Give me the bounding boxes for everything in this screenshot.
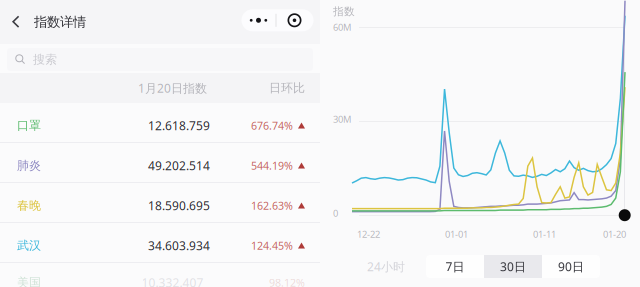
staticText: 49.202.514 (148, 157, 210, 173)
staticText: 676.74% (251, 118, 293, 133)
button[interactable]: Close (275, 9, 313, 31)
staticText: 美国 (17, 275, 41, 287)
staticText: 60M (333, 21, 351, 33)
staticText: 30日 (500, 258, 526, 274)
staticText: 0 (333, 207, 338, 219)
staticText: 124.45% (251, 238, 293, 253)
staticText: 544.19% (251, 158, 293, 173)
staticText: 指数详情 (34, 14, 86, 30)
button[interactable]: 春晚 (0, 183, 320, 223)
staticText: 春晚 (17, 198, 41, 213)
button[interactable]: 武汉 (0, 223, 320, 263)
staticText: 24小时 (367, 258, 405, 274)
staticText: 90日 (558, 258, 584, 274)
button[interactable]: 口罩 (0, 103, 320, 143)
button[interactable]: 30日 (484, 255, 542, 278)
button[interactable]: 90日 (542, 255, 600, 278)
staticText: 10.332.407 (141, 274, 203, 287)
button[interactable]: 7日 (426, 255, 484, 278)
staticText: 日环比 (269, 81, 305, 95)
staticText: 12.618.759 (148, 117, 210, 133)
staticText: 1月20日指数 (138, 80, 207, 96)
staticText: 01-01 (445, 228, 468, 240)
button[interactable]: 肺炎 (0, 143, 320, 183)
staticText: 01-11 (533, 228, 556, 240)
staticText: 30M (333, 113, 351, 125)
staticText: 01-20 (603, 228, 626, 240)
staticText: 武汉 (17, 238, 41, 253)
staticText: 98.12% (269, 275, 305, 287)
staticText: 34.603.934 (148, 237, 210, 253)
button[interactable]: 24小时 (356, 255, 416, 278)
staticText: 肺炎 (17, 158, 41, 173)
staticText: 搜索 (33, 52, 57, 67)
staticText: 7日 (445, 258, 464, 274)
staticText: 12-22 (357, 228, 380, 240)
staticText: 口罩 (17, 118, 41, 133)
button[interactable]: More (241, 9, 275, 31)
staticText: 指数 (333, 5, 355, 18)
staticText: 18.590.695 (148, 197, 210, 213)
staticText: 162.63% (251, 198, 293, 213)
button[interactable]: Back (0, 0, 34, 44)
